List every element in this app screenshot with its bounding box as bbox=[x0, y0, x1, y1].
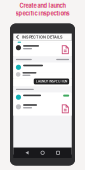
staticText: LAUNCH INSPECTION bbox=[36, 80, 67, 83]
staticText: specific inspections bbox=[15, 10, 69, 17]
staticText: Create and launch bbox=[19, 2, 65, 9]
button[interactable]: Back bbox=[15, 34, 20, 40]
staticText: INSPECTION DETAILS bbox=[22, 35, 63, 39]
button[interactable]: LAUNCH INSPECTION bbox=[34, 78, 69, 84]
